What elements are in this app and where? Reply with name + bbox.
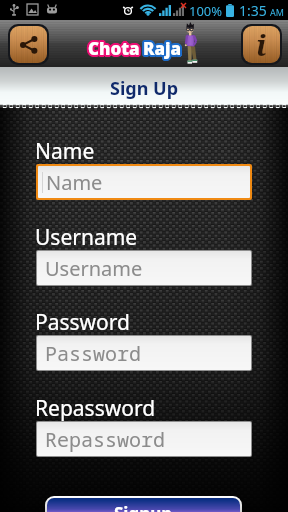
- staticText: Chota: [88, 37, 140, 60]
- staticText: Chota: [87, 35, 139, 58]
- staticText: Raja: [144, 38, 183, 61]
- staticText: Raja: [142, 38, 181, 61]
- staticText: Chota: [87, 38, 139, 61]
- staticText: Raja: [144, 36, 183, 59]
- staticText: Raja: [142, 35, 181, 58]
- staticText: Chota: [87, 37, 139, 60]
- staticText: Sign Up: [110, 76, 179, 101]
- button[interactable]: Password: [37, 336, 251, 370]
- staticText: Raja: [143, 35, 182, 58]
- staticText: Chota: [87, 36, 139, 59]
- staticText: Raja: [143, 39, 182, 62]
- staticText: Username: [35, 223, 138, 250]
- staticText: Chota: [86, 36, 138, 59]
- staticText: Raja: [143, 37, 182, 60]
- staticText: Raja: [143, 37, 182, 60]
- staticText: Name: [46, 169, 103, 196]
- staticText: Password: [35, 308, 130, 335]
- staticText: Raja: [142, 36, 181, 59]
- button[interactable]: Repassword: [37, 422, 251, 456]
- staticText: Chota: [88, 37, 140, 60]
- staticText: Repassword: [45, 426, 165, 453]
- staticText: Chota: [89, 36, 141, 59]
- staticText: Raja: [141, 37, 180, 60]
- staticText: Raja: [145, 38, 184, 61]
- staticText: Password: [45, 340, 141, 367]
- staticText: Raja: [141, 38, 180, 61]
- staticText: i: [256, 26, 267, 62]
- staticText: Chota: [89, 39, 141, 62]
- staticText: Chota: [88, 35, 140, 58]
- staticText: Chota: [90, 37, 142, 60]
- button[interactable]: Name: [38, 166, 250, 198]
- staticText: Name: [35, 137, 95, 164]
- staticText: Chota: [88, 36, 140, 59]
- staticText: Repassword: [35, 394, 156, 421]
- button[interactable]: Username: [37, 251, 251, 285]
- staticText: 100%: [189, 2, 223, 20]
- staticText: Chota: [86, 37, 138, 60]
- staticText: Chota: [90, 36, 142, 59]
- staticText: Chota: [89, 38, 141, 61]
- staticText: Chota: [87, 39, 139, 62]
- staticText: Chota: [88, 38, 140, 61]
- staticText: Username: [45, 255, 143, 282]
- staticText: Raja: [145, 36, 184, 59]
- button[interactable]: Info: [243, 26, 280, 63]
- staticText: Raja: [145, 37, 184, 60]
- staticText: Raja: [141, 36, 180, 59]
- staticText: Signup: [114, 502, 173, 512]
- staticText: Chota: [88, 39, 140, 62]
- staticText: Raja: [144, 39, 183, 62]
- staticText: Chota: [89, 37, 141, 60]
- button[interactable]: Share: [10, 26, 47, 63]
- staticText: Raja: [142, 37, 181, 60]
- staticText: Chota: [89, 35, 141, 58]
- staticText: Raja: [144, 37, 183, 60]
- staticText: Chota: [86, 38, 138, 61]
- staticText: Raja: [142, 39, 181, 62]
- staticText: Raja: [143, 38, 182, 61]
- staticText: 1:35: [239, 1, 267, 20]
- button[interactable]: Signup: [47, 498, 240, 512]
- staticText: Raja: [143, 36, 182, 59]
- staticText: Raja: [144, 35, 183, 58]
- staticText: AM: [270, 6, 284, 18]
- staticText: Chota: [90, 38, 142, 61]
